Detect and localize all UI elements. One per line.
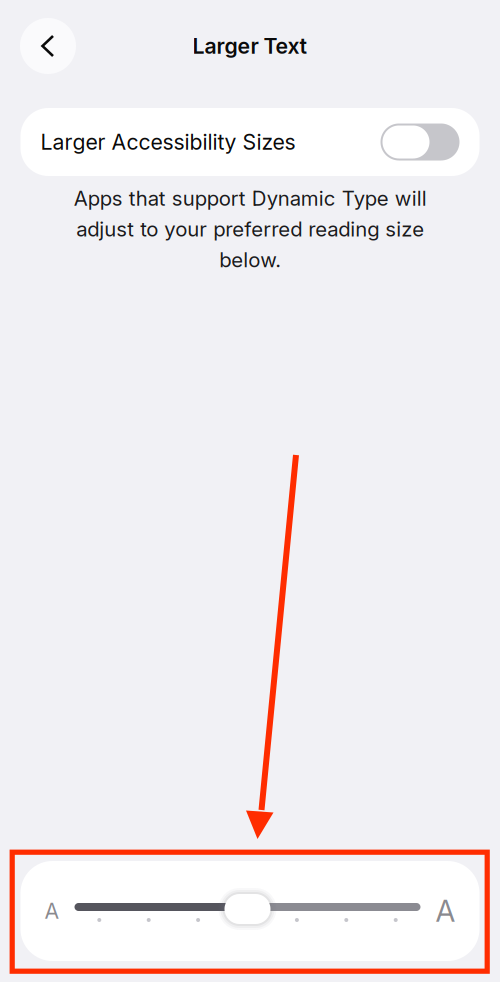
staticText: Larger Text (192, 33, 307, 59)
staticText: A (435, 893, 455, 929)
button[interactable]: Larger Accessibility Sizes (20, 108, 479, 176)
button[interactable]: Back (20, 18, 76, 74)
staticText: Apps that support Dynamic Type will adju… (73, 186, 426, 272)
staticText: A (44, 898, 59, 924)
staticText: Larger Accessibility Sizes (40, 129, 295, 155)
